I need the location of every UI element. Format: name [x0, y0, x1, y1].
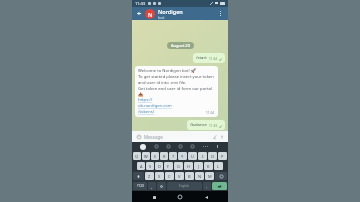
staticText: C	[168, 174, 171, 179]
button[interactable]: Z	[145, 172, 154, 180]
staticText: N	[148, 11, 153, 18]
staticText: August 20	[171, 43, 190, 48]
staticText: B	[188, 174, 191, 179]
staticText: A	[140, 164, 143, 169]
staticText: /balance	[190, 122, 207, 128]
button[interactable]: T	[169, 152, 177, 160]
button[interactable]: D	[155, 162, 163, 170]
button[interactable]: X	[155, 172, 164, 180]
button[interactable]: F	[164, 162, 173, 170]
staticText: I	[202, 154, 204, 159]
button[interactable]: Welcome to Nordigen bot! 🚀	[135, 66, 218, 117]
button[interactable]: /start	[193, 53, 225, 63]
staticText: Q	[135, 154, 139, 159]
button[interactable]: Message	[144, 134, 211, 140]
button[interactable]: Send	[212, 182, 227, 190]
button[interactable]: Numbers	[133, 182, 147, 190]
button[interactable]: R	[160, 152, 168, 160]
button[interactable]: /balance	[187, 120, 225, 130]
staticText: Get token and user id form our portal 📥	[138, 86, 215, 97]
staticText: ,	[151, 184, 153, 189]
button[interactable]: M	[205, 172, 214, 180]
button[interactable]: L	[214, 162, 223, 170]
staticText: D	[158, 164, 161, 169]
button[interactable]: Y	[178, 152, 187, 160]
staticText: 11:24	[209, 57, 218, 61]
staticText: 11:33	[135, 1, 146, 6]
staticText: M	[208, 174, 212, 179]
button[interactable]: H	[184, 162, 193, 170]
staticText: W	[144, 154, 148, 159]
button[interactable]: Home	[176, 193, 184, 201]
button[interactable]: E	[151, 152, 159, 160]
button[interactable]: Comma	[148, 182, 156, 190]
button[interactable]: Emoji	[135, 133, 142, 140]
button[interactable]: C	[165, 172, 174, 180]
button[interactable]: More	[203, 144, 208, 149]
staticText: To get started please insert your token …	[138, 74, 215, 86]
staticText: Welcome to Nordigen bot! 🚀	[138, 68, 196, 74]
staticText: H	[187, 164, 190, 169]
staticText: bot	[158, 15, 165, 20]
button[interactable]: August 20	[171, 43, 190, 48]
staticText: K	[207, 164, 210, 169]
button[interactable]: Settings	[157, 182, 166, 190]
staticText: .	[206, 184, 208, 189]
staticText: Nordigen	[158, 8, 183, 15]
button[interactable]: Q	[133, 152, 141, 160]
staticText: Y	[181, 154, 184, 159]
button[interactable]: A	[137, 162, 145, 170]
button[interactable]: Shift	[133, 172, 144, 180]
button[interactable]: S	[146, 162, 154, 170]
button[interactable]: Google assistant	[140, 144, 146, 150]
button[interactable]: Keyboard tool 4	[190, 144, 195, 149]
button[interactable]: O	[208, 152, 217, 160]
staticText: R	[163, 154, 166, 159]
button[interactable]: K	[204, 162, 213, 170]
button[interactable]: Keyboard tool 2	[166, 144, 171, 149]
button[interactable]: B	[185, 172, 194, 180]
staticText: /start	[196, 55, 207, 61]
button[interactable]: Period	[203, 182, 211, 190]
button[interactable]: N	[195, 172, 204, 180]
button[interactable]: J	[194, 162, 203, 170]
button[interactable]: U	[188, 152, 197, 160]
staticText: U	[191, 154, 194, 159]
staticText: J	[198, 164, 200, 169]
button[interactable]: Keyboard tool 3	[178, 144, 183, 149]
staticText: P	[221, 154, 224, 159]
staticText: T	[172, 154, 175, 159]
button[interactable]: Back	[135, 9, 144, 18]
staticText: N	[198, 174, 202, 179]
button[interactable]: Backspace	[215, 172, 227, 180]
button[interactable]: Keyboard tool 1	[154, 144, 159, 149]
staticText: Z	[148, 174, 151, 179]
staticText: L	[217, 164, 220, 169]
staticText: V	[178, 174, 181, 179]
button[interactable]: G	[174, 162, 183, 170]
staticText: English	[179, 184, 190, 188]
button[interactable]: V	[175, 172, 184, 180]
staticText: E	[154, 154, 157, 159]
staticText: 11:33	[209, 124, 218, 128]
staticText: https://ob.nordigen.com/tokens/	[138, 97, 172, 115]
staticText: ?123	[137, 184, 144, 188]
button[interactable]: Space	[167, 182, 202, 190]
button[interactable]: Voice input	[215, 144, 220, 149]
button[interactable]: More options	[216, 9, 225, 18]
button[interactable]: Attach	[211, 133, 218, 140]
button[interactable]: Recents	[150, 193, 158, 201]
button[interactable]: P	[218, 152, 227, 160]
staticText: S	[149, 164, 152, 169]
staticText: O	[211, 154, 215, 159]
button[interactable]: Nordigen	[158, 8, 216, 20]
staticText: G	[177, 164, 180, 169]
button[interactable]: I	[198, 152, 207, 160]
button[interactable]: W	[142, 152, 150, 160]
staticText: 11:24	[206, 111, 215, 115]
button[interactable]: Back	[202, 193, 210, 201]
staticText: X	[158, 174, 161, 179]
button[interactable]: Voice message	[218, 133, 225, 140]
button[interactable]: Profile avatar	[145, 9, 155, 19]
staticText: F	[167, 164, 170, 169]
